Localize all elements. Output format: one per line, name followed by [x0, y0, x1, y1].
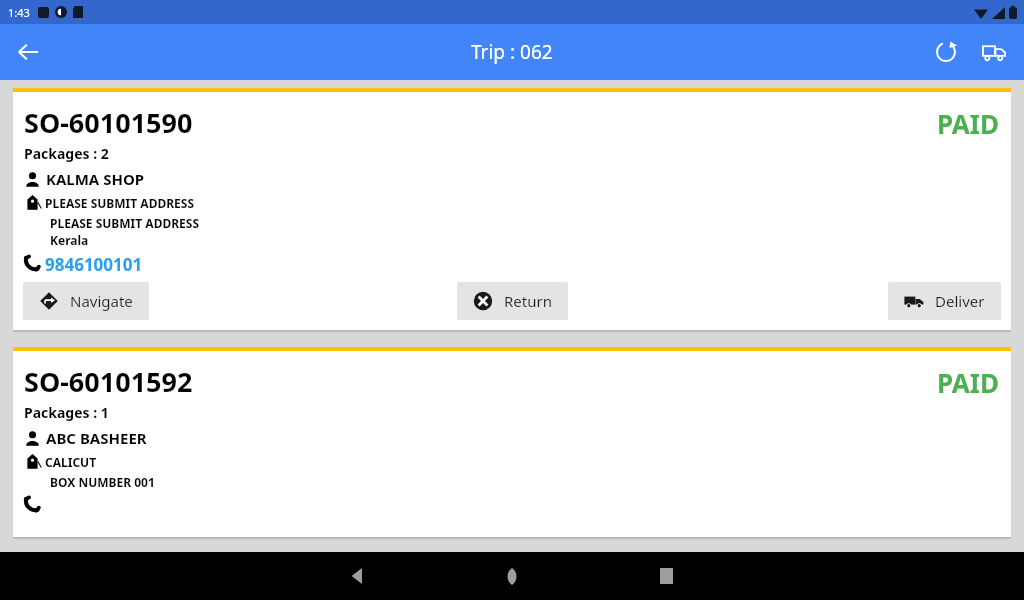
button[interactable]: Home	[488, 552, 536, 600]
staticText: BOX NUMBER 001	[50, 474, 155, 490]
staticText: PLEASE SUBMIT ADDRESS	[50, 215, 200, 231]
button[interactable]: Deliver	[888, 282, 1001, 320]
staticText: PAID	[937, 365, 999, 400]
staticText: SO-60101590	[24, 104, 193, 141]
button[interactable]: Return	[457, 282, 568, 320]
button[interactable]: Back	[334, 552, 382, 600]
staticText: Packages : 2	[24, 144, 109, 163]
staticText: Deliver	[935, 291, 985, 311]
button[interactable]: Navigate	[23, 282, 149, 320]
staticText: 1:43	[8, 5, 30, 20]
staticText: 9846100101	[45, 253, 143, 272]
staticText: ABC BASHEER	[46, 428, 147, 448]
staticText: Trip : 062	[471, 39, 553, 65]
staticText: PLEASE SUBMIT ADDRESS	[45, 195, 195, 211]
button[interactable]: Refresh	[922, 28, 970, 76]
button[interactable]: Deliveries	[970, 28, 1018, 76]
staticText: Kerala	[50, 232, 89, 248]
button[interactable]: Recents	[642, 552, 690, 600]
button[interactable]: Back	[4, 28, 52, 76]
staticText: PAID	[937, 106, 999, 141]
staticText: Return	[504, 291, 552, 311]
staticText: Packages : 1	[24, 403, 109, 422]
staticText: CALICUT	[45, 454, 97, 470]
button[interactable]: 9846100101	[45, 253, 143, 272]
staticText: KALMA SHOP	[46, 169, 145, 189]
staticText: SO-60101592	[24, 363, 193, 400]
staticText: Navigate	[70, 291, 133, 311]
